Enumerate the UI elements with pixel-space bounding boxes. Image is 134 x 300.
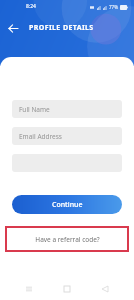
staticText: Email Address: [19, 132, 62, 141]
staticText: Full Name: [19, 105, 50, 114]
button[interactable]: Have a referral code?: [7, 228, 127, 250]
staticText: Continue: [52, 200, 83, 210]
staticText: PROFILE DETAILS: [29, 23, 94, 33]
button[interactable]: Full Name: [12, 100, 122, 118]
button[interactable]: Back: [96, 280, 114, 298]
button[interactable]: Continue: [12, 195, 122, 214]
button[interactable]: Home: [58, 280, 76, 298]
staticText: Have a referral code?: [35, 235, 100, 244]
staticText: 8:24: [26, 3, 36, 10]
button[interactable]: Email Address: [12, 127, 122, 145]
button[interactable]: Recents: [20, 280, 38, 298]
button[interactable]: Back: [5, 20, 21, 36]
staticText: 77%: [109, 4, 118, 10]
